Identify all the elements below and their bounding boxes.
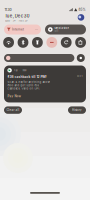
button[interactable]: Clear all [4, 106, 22, 114]
staticText: Clear all [6, 108, 19, 112]
staticText: Media vibe [54, 26, 69, 30]
staticText: Scan & Pay for anything above ₹100 and g… [7, 80, 50, 90]
button[interactable]: History [68, 106, 86, 114]
button[interactable]: Media vibe [45, 24, 86, 34]
staticText: Pay Now [7, 94, 20, 98]
button[interactable]: Flashlight [32, 37, 43, 48]
button[interactable]: Auto rotate [61, 37, 72, 48]
button[interactable]: Bluetooth [18, 37, 28, 48]
staticText: Sunny · 24° · Feels 26° [5, 19, 28, 22]
button[interactable]: Wi-Fi [3, 37, 14, 48]
button[interactable]: Account [77, 13, 85, 21]
staticText: 12:01 [77, 75, 83, 78]
button[interactable]: Pay · now [4, 65, 86, 102]
staticText: Off [54, 30, 58, 32]
staticText: Pay · now [14, 69, 27, 72]
staticText: Internet [12, 28, 24, 31]
staticText: 85% [78, 8, 85, 12]
button[interactable]: Quick settings [77, 54, 85, 62]
staticText: Tue, Dec 30 [5, 13, 30, 19]
staticText: ··· [35, 27, 38, 32]
button[interactable]: Do not disturb [46, 37, 57, 48]
button[interactable]: Internet [4, 24, 41, 34]
staticText: History [72, 108, 82, 112]
staticText: ₹36 cashback till 12 PM! [7, 75, 46, 79]
staticText: 11:30 [4, 8, 11, 12]
button[interactable]: Battery saver [75, 37, 86, 48]
